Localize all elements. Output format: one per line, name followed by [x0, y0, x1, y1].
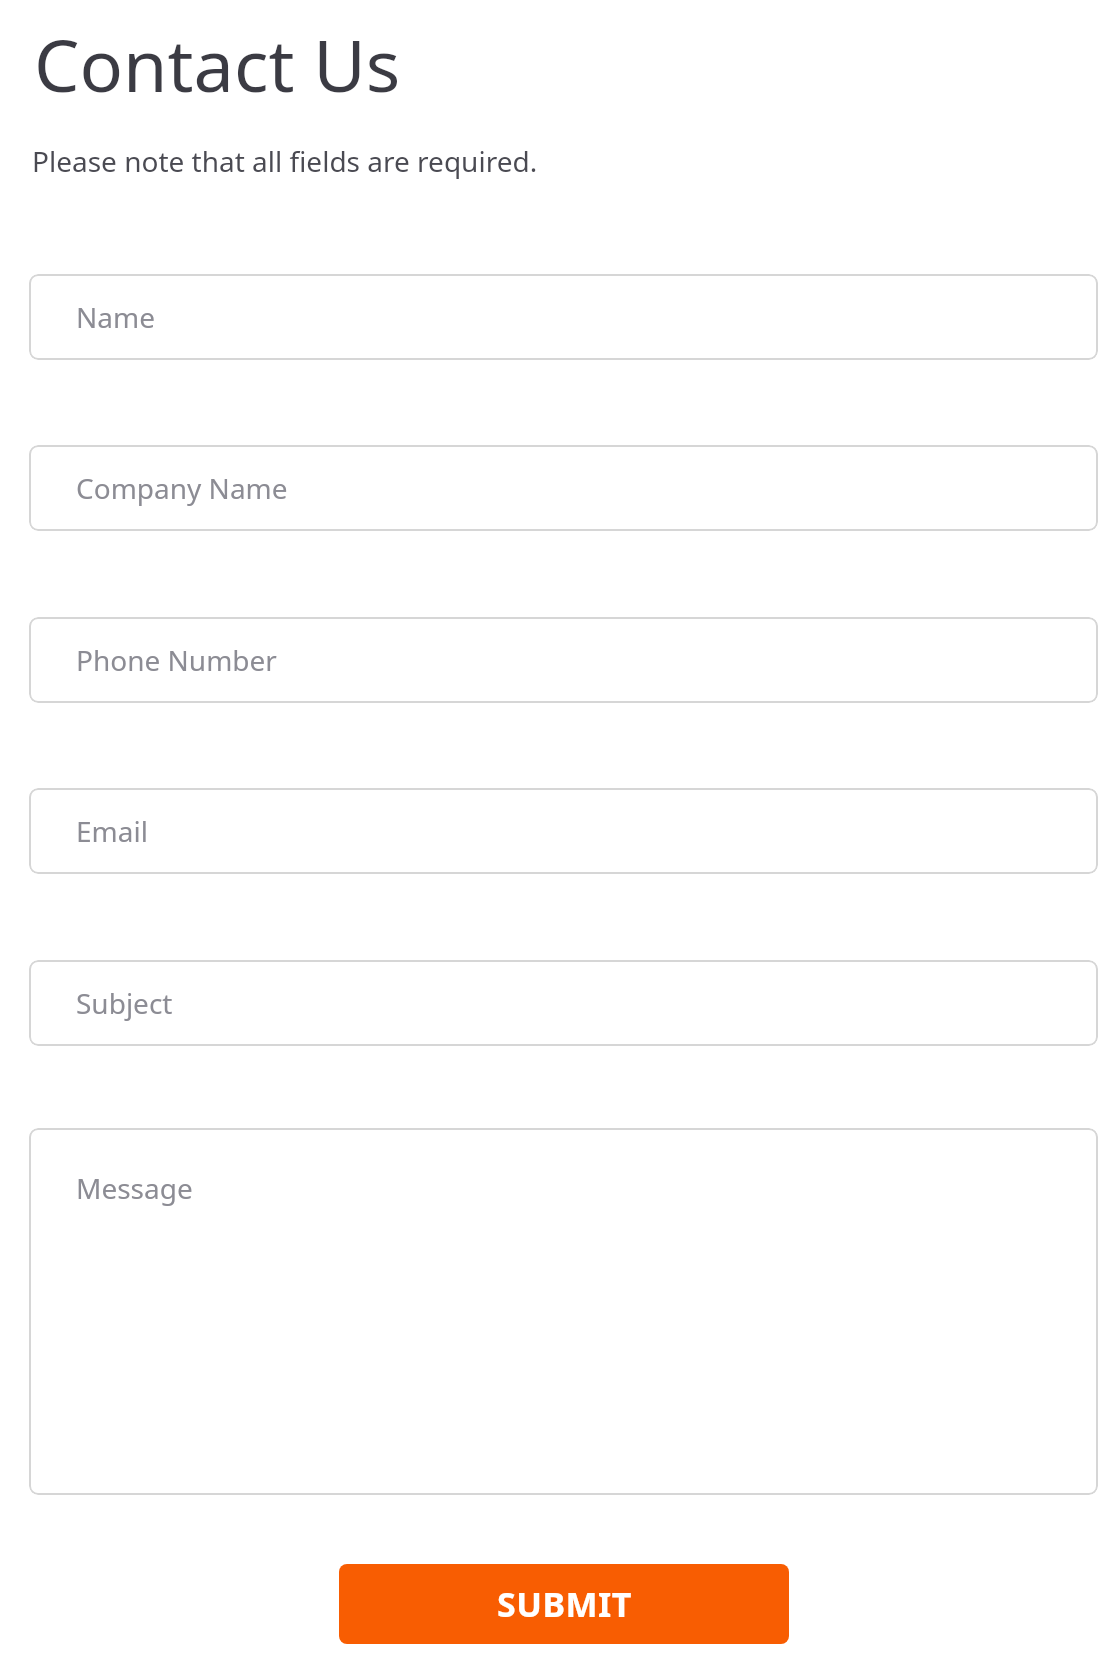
- staticText: Subject: [76, 984, 173, 1022]
- staticText: Company Name: [76, 469, 288, 507]
- button[interactable]: Message: [29, 1128, 1098, 1495]
- staticText: Message: [76, 1169, 193, 1207]
- staticText: SUBMIT: [497, 1581, 632, 1627]
- staticText: Name: [76, 298, 155, 336]
- button[interactable]: Name: [29, 274, 1098, 360]
- button[interactable]: Email: [29, 788, 1098, 874]
- staticText: Email: [76, 812, 148, 850]
- staticText: Contact Us: [34, 15, 401, 113]
- staticText: Please note that all fields are required…: [32, 142, 538, 180]
- button[interactable]: Subject: [29, 960, 1098, 1046]
- button[interactable]: Company Name: [29, 445, 1098, 531]
- button[interactable]: Phone Number: [29, 617, 1098, 703]
- button[interactable]: SUBMIT: [339, 1564, 789, 1644]
- staticText: Phone Number: [76, 641, 277, 679]
